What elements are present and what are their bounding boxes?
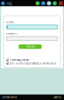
staticText: Konto: [6, 21, 15, 24]
button[interactable]: Anmelden [1, 94, 18, 100]
button[interactable]: Home [35, 1, 40, 5]
staticText: Anmeldung merken [10, 59, 29, 61]
button[interactable]: Browser [1, 1, 5, 5]
staticText: Kennwort: [6, 32, 18, 35]
button[interactable]: Anmeldung merken [6, 59, 58, 61]
staticText: Menü [54, 96, 62, 99]
staticText: Anmelden [26, 45, 35, 48]
button[interactable]: New tab [52, 1, 57, 5]
staticText: iog [6, 1, 11, 5]
button[interactable]: Bei Aufruf automatisch anmelden [6, 62, 58, 65]
button[interactable]: Close [58, 1, 63, 6]
button[interactable]: Menü [53, 94, 63, 100]
button[interactable]: Anmelden [19, 44, 42, 49]
button[interactable]: Bookmarks [47, 1, 51, 5]
button[interactable]: Reload [41, 1, 45, 5]
staticText: Anmelden [2, 96, 17, 99]
staticText: Bei Aufruf automatisch anmelden [10, 62, 57, 65]
